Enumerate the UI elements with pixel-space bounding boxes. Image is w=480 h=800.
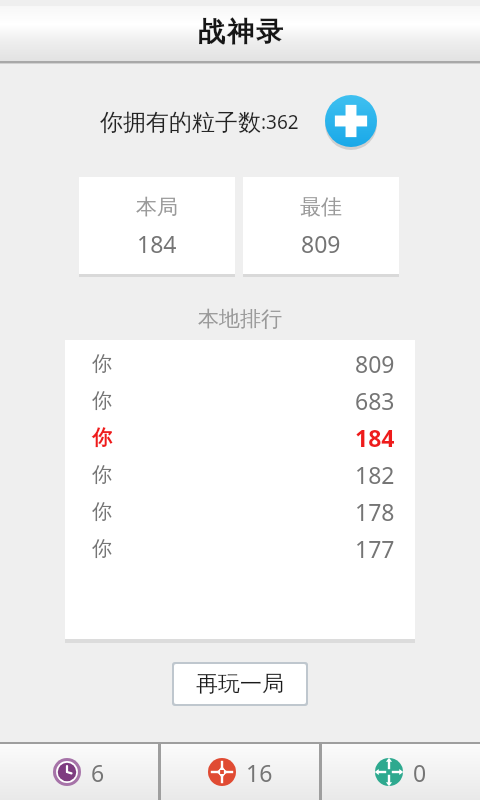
staticText: 战神录 <box>197 15 284 49</box>
staticText: 683 <box>355 385 395 416</box>
button[interactable]: Time <box>0 744 158 800</box>
staticText: 本局 <box>136 194 178 220</box>
button[interactable]: 你 <box>92 345 395 382</box>
staticText: 177 <box>355 533 395 564</box>
staticText: 184 <box>137 228 177 259</box>
button[interactable]: 你 <box>92 456 395 493</box>
button[interactable]: 本局 <box>79 177 235 274</box>
staticText: 6 <box>91 757 105 788</box>
button[interactable]: Add particles <box>321 92 381 152</box>
button[interactable]: 你 <box>92 493 395 530</box>
staticText: 你 <box>92 388 112 413</box>
staticText: 你 <box>92 499 112 524</box>
button[interactable]: 最佳 <box>243 177 399 274</box>
staticText: 你拥有的粒子数 <box>100 108 261 137</box>
staticText: 809 <box>355 348 395 379</box>
staticText: 你 <box>92 462 112 487</box>
staticText: 16 <box>246 757 273 788</box>
button[interactable]: 你 <box>92 419 395 456</box>
staticText: 再玩一局 <box>196 670 284 698</box>
staticText: 你 <box>92 425 112 450</box>
staticText: 809 <box>301 228 341 259</box>
button[interactable]: Hits <box>161 744 319 800</box>
button[interactable]: Moves <box>322 744 480 800</box>
staticText: 0 <box>413 757 427 788</box>
staticText: 182 <box>355 459 395 490</box>
button[interactable]: 你 <box>92 382 395 419</box>
staticText: 178 <box>355 496 395 527</box>
staticText: 你 <box>92 351 112 376</box>
staticText: 本地排行 <box>0 306 480 332</box>
staticText: :362 <box>261 109 299 135</box>
staticText: 你 <box>92 536 112 561</box>
staticText: 最佳 <box>300 194 342 220</box>
staticText: 184 <box>355 422 395 453</box>
button[interactable]: 你 <box>92 530 395 567</box>
button[interactable]: 再玩一局 <box>174 664 306 704</box>
